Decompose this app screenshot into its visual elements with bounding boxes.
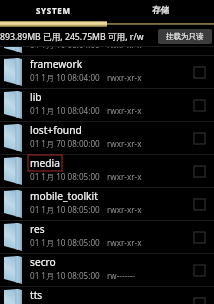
- staticText: 挂载为只读: [166, 32, 204, 41]
- staticText: rwxr-xr-x: [107, 204, 142, 214]
- button[interactable]: Select secro: [194, 265, 205, 276]
- button[interactable]: framework: [0, 56, 214, 89]
- button[interactable]: etc: [0, 47, 214, 56]
- staticText: 01 1月 10 08:04:00: [30, 72, 100, 82]
- button[interactable]: Select res: [194, 232, 205, 243]
- staticText: rwxr-xr-x: [107, 171, 142, 181]
- button[interactable]: SYSTEM: [0, 0, 107, 21]
- staticText: lib: [30, 90, 42, 104]
- staticText: 01 1月 10 08:04:00: [30, 105, 100, 115]
- staticText: secro: [30, 255, 56, 269]
- staticText: res: [30, 222, 45, 236]
- staticText: rwxr-xr-x: [107, 237, 142, 247]
- button[interactable]: Select media: [194, 166, 205, 177]
- staticText: 01 1月 10 08:05:00: [30, 270, 100, 280]
- staticText: rwxr-xr-x: [107, 47, 142, 49]
- staticText: rwxr-xr-x: [107, 138, 142, 148]
- button[interactable]: Select mobile_toolkit: [194, 199, 205, 210]
- button[interactable]: 挂载为只读: [158, 29, 212, 44]
- button[interactable]: Select framework: [194, 67, 205, 78]
- button[interactable]: tts: [0, 287, 214, 304]
- staticText: SYSTEM: [36, 5, 71, 16]
- staticText: framework: [30, 57, 83, 71]
- button[interactable]: Select tts: [194, 298, 205, 304]
- staticText: 01 1月 70 08:00:00: [30, 138, 100, 148]
- staticText: tts: [30, 288, 43, 302]
- staticText: 存储: [152, 5, 169, 16]
- button[interactable]: Select lost+found: [194, 133, 205, 144]
- button[interactable]: Select lib: [194, 100, 205, 111]
- staticText: 01 1月 10 08:04:00: [30, 47, 100, 49]
- button[interactable]: 存储: [107, 0, 214, 21]
- button[interactable]: lost+found: [0, 122, 214, 155]
- staticText: 893.89MB 已用, 245.75MB 可用, r/w: [0, 31, 144, 43]
- button[interactable]: res: [0, 221, 214, 254]
- button[interactable]: mobile_toolkit: [0, 188, 214, 221]
- staticText: rw-------: [107, 270, 135, 280]
- button[interactable]: secro: [0, 254, 214, 287]
- staticText: rwxr-xr-x: [107, 72, 142, 82]
- staticText: rwxr-xr-x: [107, 105, 142, 115]
- staticText: 01 1月 10 08:05:00: [30, 237, 100, 247]
- staticText: lost+found: [30, 123, 82, 137]
- staticText: 01 1月 10 08:05:00: [30, 204, 100, 214]
- button[interactable]: lib: [0, 89, 214, 122]
- staticText: mobile_toolkit: [30, 189, 98, 203]
- staticText: 01 1月 10 08:05:00: [30, 171, 100, 181]
- button[interactable]: media: [0, 155, 214, 188]
- staticText: media: [30, 156, 60, 170]
